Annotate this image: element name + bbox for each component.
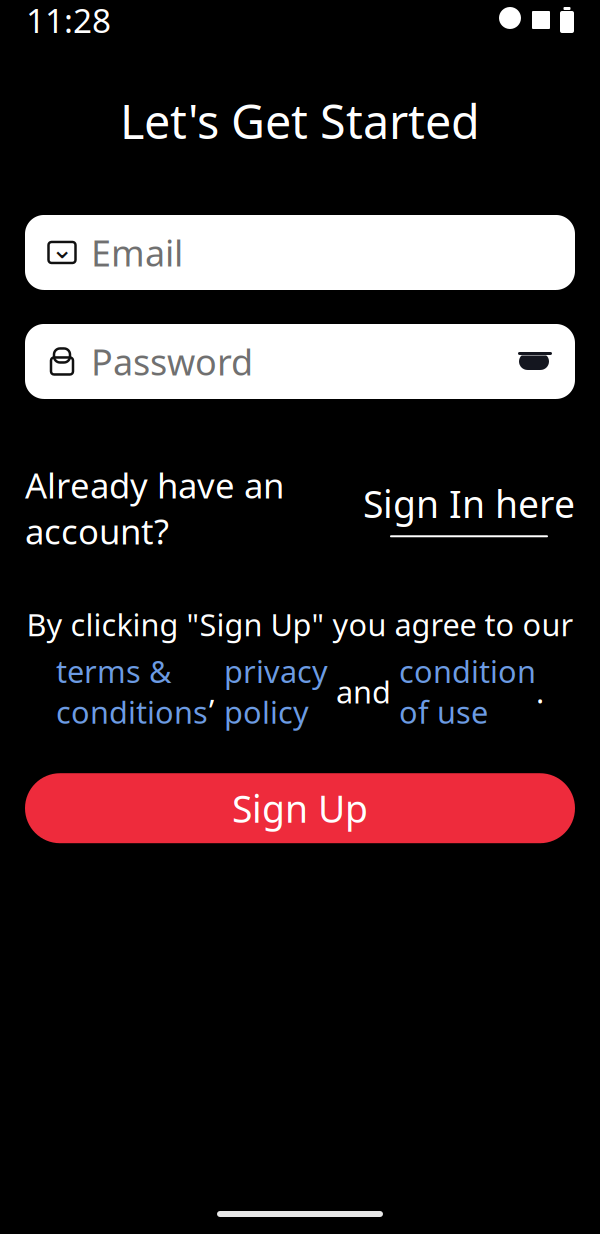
staticText: terms & conditions: [56, 651, 208, 732]
staticText: By clicking "Sign Up" you agree to our: [26, 604, 573, 645]
staticText: privacy policy: [224, 651, 328, 732]
staticText: Email: [91, 229, 183, 276]
staticText: Already have an account?: [25, 462, 284, 554]
staticText: 11:28: [26, 0, 111, 42]
staticText: and: [328, 671, 399, 712]
staticText: Password: [91, 338, 253, 385]
button[interactable]: terms & conditions: [56, 651, 208, 732]
staticText: Sign In here: [363, 479, 575, 528]
staticText: ⌄: [51, 234, 73, 264]
staticText: .: [536, 671, 544, 712]
staticText: condition of use: [399, 651, 536, 732]
button[interactable]: ⌄: [25, 215, 575, 290]
staticText: Sign Up: [232, 783, 368, 833]
button[interactable]: condition of use: [399, 651, 536, 732]
button[interactable]: Password: [25, 324, 575, 399]
button[interactable]: privacy policy: [224, 651, 328, 732]
staticText: Let's Get Started: [120, 90, 480, 152]
button[interactable]: Sign Up: [25, 773, 575, 843]
staticText: ,: [208, 671, 224, 712]
button[interactable]: Sign In here: [363, 479, 575, 537]
